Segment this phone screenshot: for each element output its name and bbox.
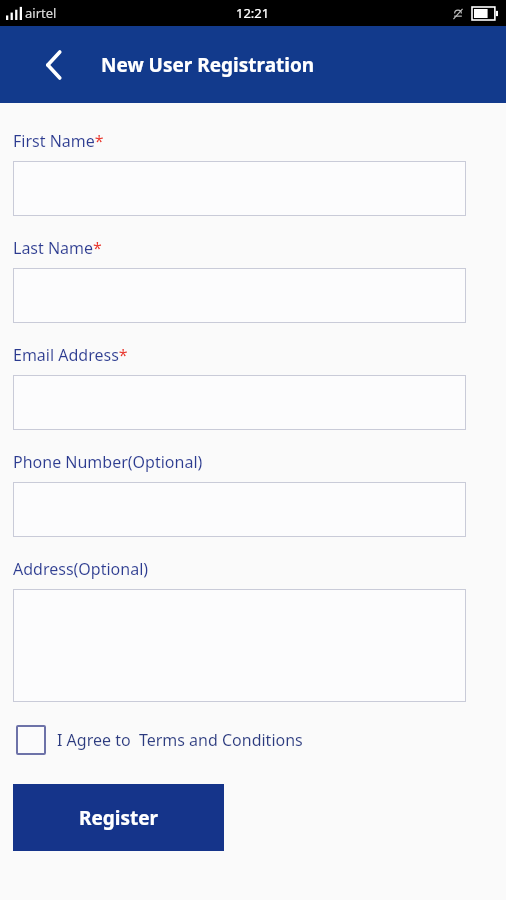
button[interactable]: Back — [30, 42, 76, 88]
staticText: Address(Optional) — [13, 558, 149, 580]
button[interactable] — [13, 589, 466, 702]
staticText: Last Name* — [13, 237, 102, 259]
button[interactable]: I Agree to Terms and Conditions — [13, 725, 303, 755]
staticText: 12:21 — [236, 4, 270, 22]
button[interactable] — [13, 482, 466, 537]
staticText: New User Registration — [101, 52, 315, 78]
staticText: I Agree to Terms and Conditions — [57, 729, 303, 751]
button[interactable] — [13, 268, 466, 323]
staticText: Phone Number(Optional) — [13, 451, 203, 473]
staticText: Register — [79, 805, 159, 831]
button[interactable] — [13, 375, 466, 430]
button[interactable]: Register — [13, 784, 224, 851]
staticText: First Name* — [13, 130, 104, 152]
staticText: Email Address* — [13, 344, 128, 366]
button[interactable] — [13, 161, 466, 216]
staticText: airtel — [25, 4, 57, 22]
